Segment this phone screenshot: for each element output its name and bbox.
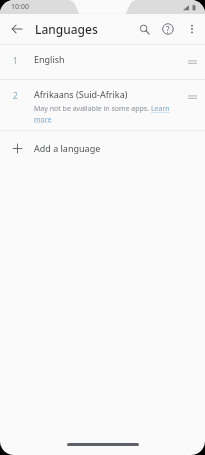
staticText: 2 [13,90,18,101]
button[interactable]: More options [180,17,204,41]
staticText: 1 [13,55,18,66]
staticText: Add a language [34,142,101,154]
button[interactable]: Search [132,17,156,41]
staticText: 10:00 [11,2,29,12]
staticText: English [34,53,65,65]
staticText: ? [166,24,170,35]
button[interactable]: Add a language [0,131,205,165]
staticText: May not be available in some apps. Learn… [34,104,183,124]
button[interactable]: Help [156,17,180,41]
staticText: Languages [35,21,98,37]
button[interactable]: 1 [0,45,205,79]
staticText: Afrikaans (Suid-Afrika) [34,88,128,100]
button[interactable]: Reorder Afrikaans (Suid-Afrika) [183,88,201,106]
button[interactable]: 2 [0,80,205,130]
button[interactable]: Reorder English [183,53,201,71]
button[interactable]: Back [5,17,29,41]
